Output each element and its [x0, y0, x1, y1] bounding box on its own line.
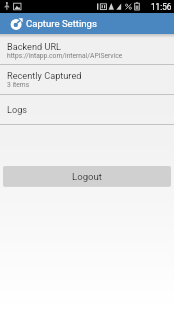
staticText: Backend URL: [7, 41, 62, 52]
button[interactable]: Logs: [0, 95, 174, 125]
staticText: Logout: [72, 171, 102, 182]
staticText: 3 items: [7, 81, 30, 89]
button[interactable]: Recently Captured: [0, 65, 174, 95]
staticText: Capture Settings: [26, 18, 97, 29]
button[interactable]: Logout: [3, 166, 171, 186]
staticText: Logs: [7, 104, 28, 115]
button[interactable]: Capture: [10, 17, 24, 31]
staticText: 11:56: [151, 2, 172, 12]
staticText: https://intapp.com/internal/APIService: [7, 52, 123, 60]
staticText: Recently Captured: [7, 70, 82, 81]
button[interactable]: Backend URL: [0, 34, 174, 65]
